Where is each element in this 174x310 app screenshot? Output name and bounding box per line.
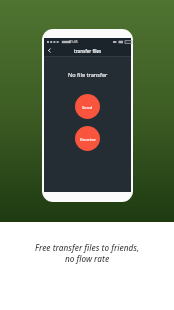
staticText: Receive — [80, 136, 96, 142]
button[interactable]: Send — [75, 94, 100, 119]
button[interactable]: Back — [44, 45, 55, 56]
button[interactable]: Receive — [75, 126, 100, 151]
staticText: transfer files — [74, 48, 102, 54]
staticText: Send — [82, 104, 93, 110]
staticText: 11:45 — [69, 39, 78, 44]
staticText: No file transfer — [68, 71, 108, 79]
staticText: Free transfer files to friends, no flow … — [0, 242, 174, 264]
